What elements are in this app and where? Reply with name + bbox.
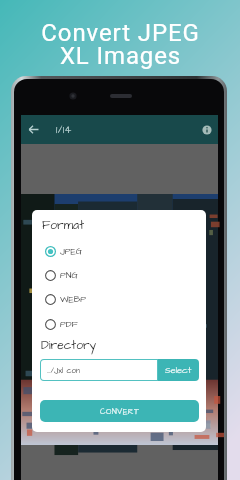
button[interactable]: PDF xyxy=(44,313,199,335)
button[interactable]: CONVERT xyxy=(40,400,199,422)
button[interactable]: .../Jxl con xyxy=(40,359,158,381)
staticText: Convert JPEG XL Images xyxy=(41,19,200,70)
staticText: 1/14 xyxy=(56,123,72,137)
staticText: PDF xyxy=(60,318,78,331)
staticText: Directory xyxy=(41,337,97,354)
staticText: Format xyxy=(42,217,84,234)
button[interactable]: JPEG xyxy=(44,240,199,262)
staticText: .../Jxl con xyxy=(47,365,81,376)
button[interactable]: WEBP xyxy=(44,288,199,310)
staticText: JPEG xyxy=(60,245,83,258)
staticText: CONVERT xyxy=(100,406,140,417)
staticText: PNG xyxy=(60,269,78,282)
button[interactable]: Select xyxy=(158,359,199,381)
staticText: WEBP xyxy=(60,293,86,306)
button[interactable]: Back xyxy=(21,115,45,144)
button[interactable]: Info xyxy=(196,115,218,144)
staticText: Select xyxy=(165,364,192,377)
button[interactable]: PNG xyxy=(44,264,199,286)
